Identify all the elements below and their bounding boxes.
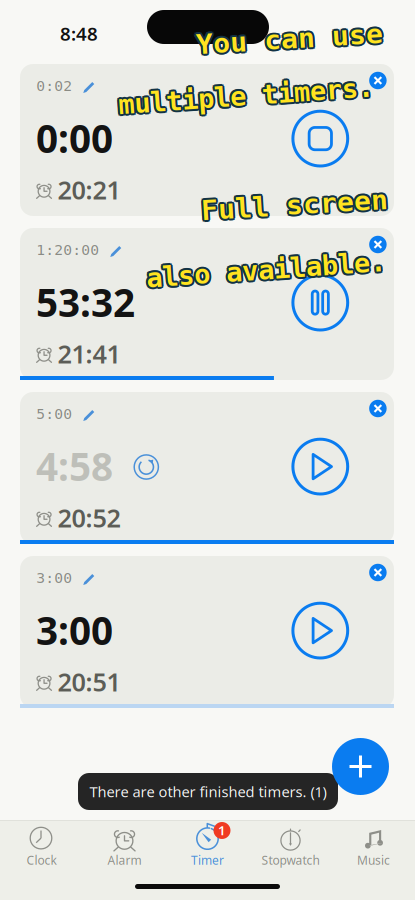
staticText: You can use — [194, 23, 381, 55]
staticText: You can use — [196, 21, 383, 53]
staticText: Full screen — [201, 191, 388, 223]
button[interactable]: Pause timer — [282, 265, 358, 341]
staticText: You can use — [197, 24, 384, 56]
staticText: also available. — [144, 255, 384, 285]
button[interactable]: Music — [332, 820, 415, 880]
button[interactable]: Delete timer — [361, 63, 395, 97]
staticText: Music — [357, 852, 390, 868]
staticText: Alarm — [107, 852, 141, 868]
button[interactable]: Start timer — [282, 429, 358, 505]
staticText: 3:00 — [36, 604, 113, 656]
staticText: 0:02 — [36, 77, 72, 94]
staticText: 4:58 — [36, 440, 113, 492]
staticText: Full screen — [202, 190, 389, 222]
staticText: Full screen — [199, 187, 386, 219]
staticText: Full screen — [202, 187, 389, 219]
staticText: multiple timers. — [120, 81, 376, 111]
staticText: multiple timers. — [119, 79, 375, 110]
button[interactable]: Start timer — [282, 593, 358, 669]
button[interactable]: Delete timer — [361, 227, 395, 261]
staticText: also available. — [144, 253, 384, 284]
staticText: multiple timers. — [116, 82, 372, 113]
staticText: also available. — [148, 255, 388, 285]
staticText: You can use — [194, 24, 381, 56]
staticText: also available. — [146, 253, 386, 283]
button[interactable]: Delete timer — [361, 555, 395, 589]
staticText: 0:00 — [36, 112, 113, 164]
staticText: 20:21 — [57, 173, 120, 206]
button[interactable]: Stopwatch — [249, 820, 332, 880]
staticText: Full screen — [203, 189, 390, 221]
staticText: 20:51 — [57, 665, 120, 698]
staticText: 53:32 — [36, 276, 135, 328]
staticText: Stopwatch — [261, 852, 319, 868]
staticText: Full screen — [199, 189, 386, 221]
staticText: You can use — [196, 23, 383, 55]
staticText: also available. — [147, 256, 387, 287]
staticText: also available. — [147, 253, 387, 284]
button[interactable]: Stop timer — [282, 101, 358, 177]
button[interactable]: Add timer — [332, 738, 389, 795]
staticText: Full screen — [201, 187, 388, 219]
staticText: Timer — [191, 852, 224, 868]
staticText: There are other finished timers. (1) — [89, 782, 326, 801]
staticText: also available. — [144, 256, 384, 287]
staticText: 5:00 — [36, 405, 72, 422]
staticText: also available. — [146, 255, 386, 285]
staticText: Full screen — [199, 190, 386, 222]
staticText: multiple timers. — [118, 83, 374, 113]
staticText: You can use — [194, 21, 381, 53]
staticText: multiple timers. — [118, 79, 374, 109]
staticText: 1:20:00 — [36, 241, 99, 258]
button[interactable]: Clock — [0, 820, 83, 880]
staticText: 3:00 — [36, 569, 72, 586]
button[interactable]: Alarm — [83, 820, 166, 880]
staticText: multiple timers. — [118, 81, 374, 111]
staticText: multiple timers. — [116, 81, 372, 111]
button[interactable]: Delete timer — [361, 391, 395, 425]
staticText: You can use — [198, 23, 385, 55]
button[interactable]: 1 — [166, 820, 249, 880]
staticText: also available. — [146, 257, 386, 287]
staticText: 1 — [218, 821, 226, 839]
staticText: Full screen — [201, 189, 388, 221]
staticText: 21:41 — [57, 337, 120, 370]
staticText: multiple timers. — [116, 79, 372, 110]
staticText: You can use — [197, 21, 384, 53]
staticText: 8:48 — [60, 21, 98, 46]
staticText: 20:52 — [57, 501, 120, 534]
staticText: multiple timers. — [119, 82, 375, 113]
staticText: Clock — [26, 852, 56, 868]
staticText: You can use — [196, 25, 383, 57]
